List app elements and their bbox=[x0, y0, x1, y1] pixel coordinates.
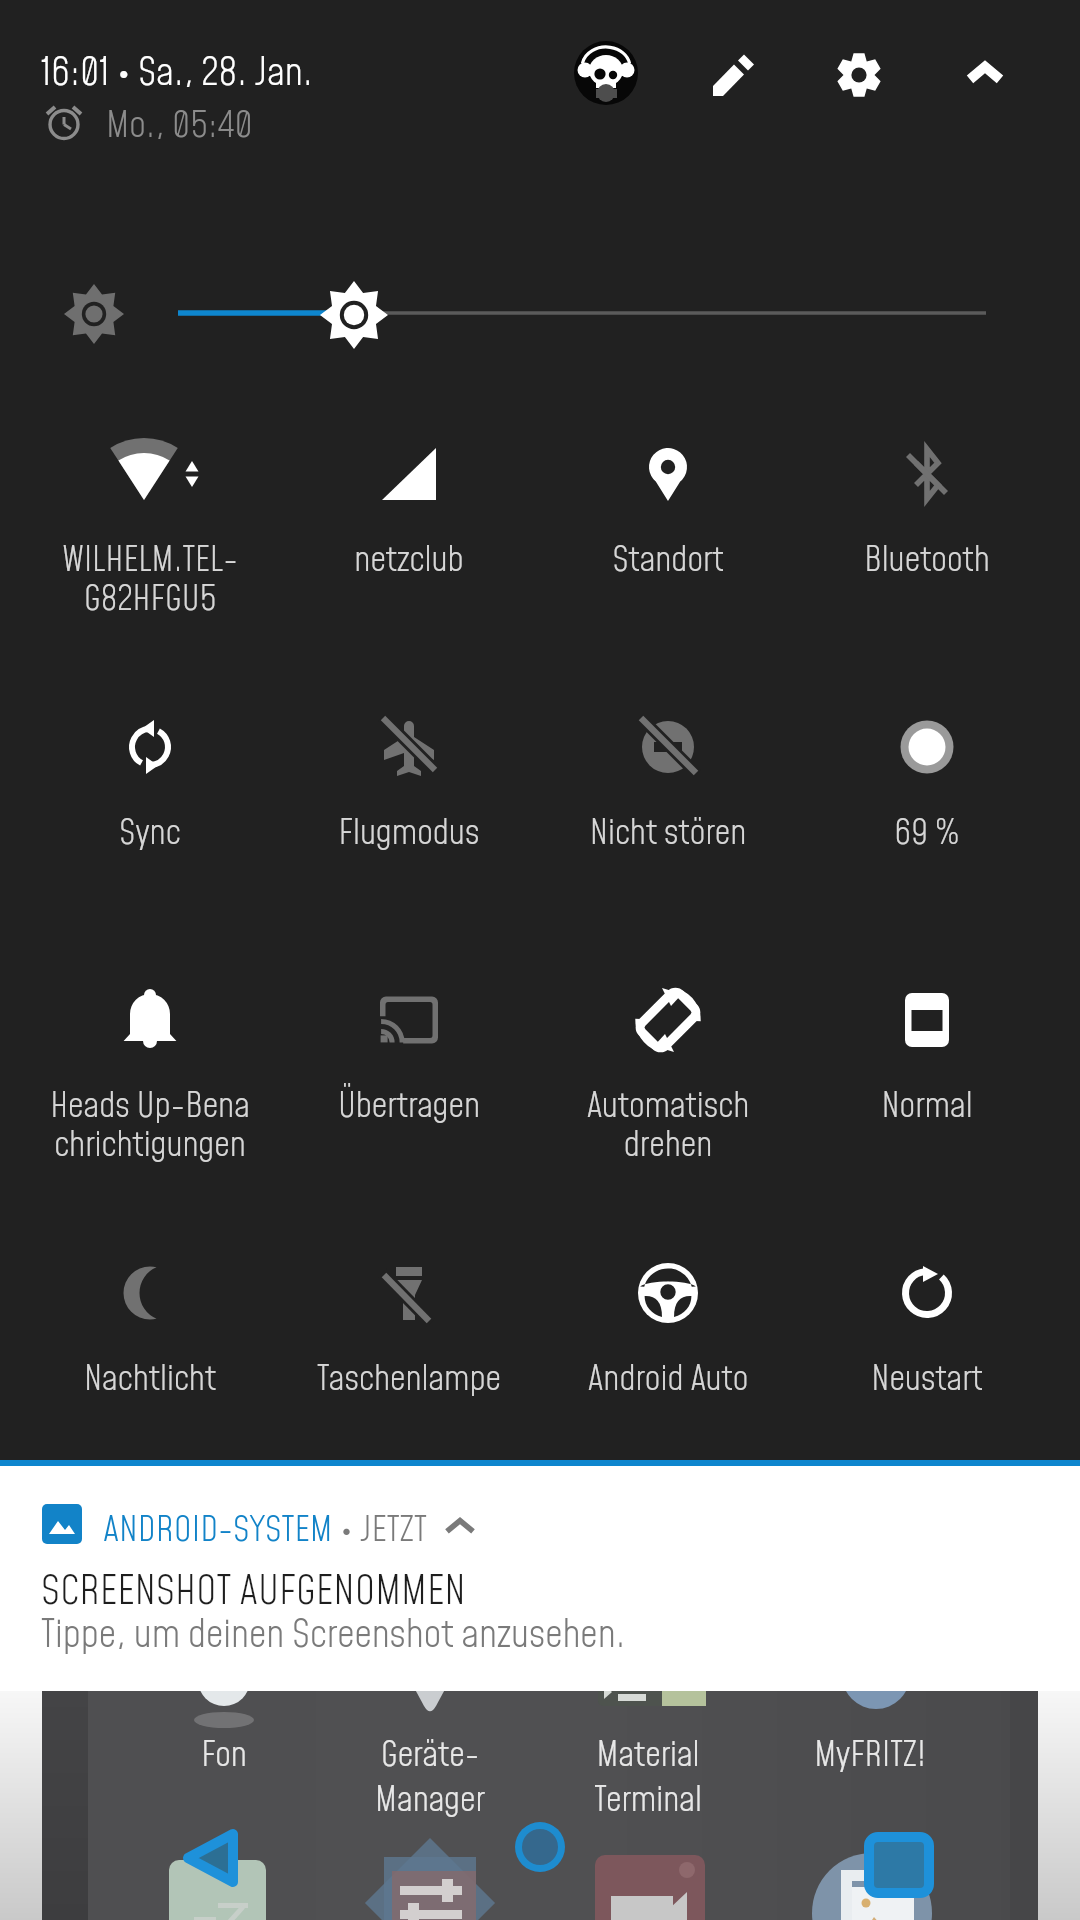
staticText: JETZT bbox=[360, 1506, 427, 1544]
staticText: netzclub bbox=[280, 537, 538, 584]
button[interactable]: Android Auto bbox=[539, 1231, 797, 1447]
button[interactable]: Standort bbox=[539, 412, 797, 628]
button[interactable]: Einklappen bbox=[955, 45, 1015, 105]
staticText: Neustart bbox=[798, 1356, 1056, 1403]
button[interactable]: Einstellungen bbox=[829, 45, 889, 105]
staticText: Übertragen bbox=[280, 1083, 538, 1130]
staticText: Heads Up-Bena chrichtigungen bbox=[21, 1083, 279, 1170]
button[interactable]: Nachtlicht bbox=[21, 1231, 279, 1447]
staticText: Normal bbox=[798, 1083, 1056, 1130]
button[interactable]: Taschenlampe bbox=[280, 1231, 538, 1447]
button[interactable]: Fon bbox=[42, 1691, 1038, 1920]
button[interactable]: Sync bbox=[21, 685, 279, 901]
staticText: Android Auto bbox=[539, 1356, 797, 1403]
button[interactable]: Übertragen bbox=[280, 958, 538, 1174]
staticText: Nachtlicht bbox=[21, 1356, 279, 1403]
button[interactable]: Profil bbox=[574, 41, 638, 105]
button[interactable]: Heads Up-Bena chrichtigungen bbox=[21, 958, 279, 1174]
button[interactable]: Neustart bbox=[798, 1231, 1056, 1447]
staticText: 69 % bbox=[798, 810, 1056, 857]
staticText: Geräte- Manager bbox=[320, 1732, 540, 1825]
button[interactable]: Normal bbox=[798, 958, 1056, 1174]
staticText: Automatisch drehen bbox=[539, 1083, 797, 1170]
button[interactable]: 69 % bbox=[798, 685, 1056, 901]
staticText: Flugmodus bbox=[280, 810, 538, 857]
button[interactable]: Automatisch drehen bbox=[539, 958, 797, 1174]
staticText: Sync bbox=[21, 810, 279, 857]
button[interactable]: WILHELM.TEL- G82HFGU5 bbox=[21, 412, 279, 628]
staticText: • bbox=[333, 1506, 360, 1544]
staticText: Standort bbox=[539, 537, 797, 584]
staticText: Fon bbox=[114, 1732, 334, 1779]
button[interactable]: Flugmodus bbox=[280, 685, 538, 901]
staticText: Tippe, um deinen Screenshot anzusehen. bbox=[41, 1609, 626, 1662]
staticText: Mo., 05:40 bbox=[106, 101, 253, 151]
button[interactable]: Bluetooth bbox=[798, 412, 1056, 628]
button[interactable]: Bearbeiten bbox=[703, 45, 763, 105]
staticText: WILHELM.TEL- G82HFGU5 bbox=[21, 537, 279, 624]
staticText: MyFRITZ! bbox=[760, 1732, 980, 1779]
staticText: ANDROID-SYSTEM bbox=[103, 1506, 333, 1544]
staticText: Nicht stören bbox=[539, 810, 797, 857]
staticText: Taschenlampe bbox=[280, 1356, 538, 1403]
staticText: SCREENSHOT AUFGENOMMEN bbox=[41, 1564, 466, 1620]
button[interactable]: ANDROID-SYSTEM bbox=[103, 1506, 477, 1544]
button[interactable]: Nicht stören bbox=[539, 685, 797, 901]
staticText: 16:01 • Sa., 28. Jan. bbox=[41, 47, 313, 100]
button[interactable]: netzclub bbox=[280, 412, 538, 628]
staticText: Material Terminal bbox=[538, 1732, 758, 1825]
staticText: Bluetooth bbox=[798, 537, 1056, 584]
